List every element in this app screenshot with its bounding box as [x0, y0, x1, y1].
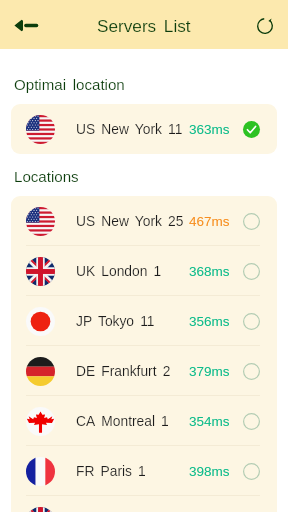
staticText: 398ms: [189, 464, 230, 479]
button[interactable]: UK London 1: [11, 246, 277, 296]
button[interactable]: DE Frankfurt 2: [11, 346, 277, 396]
staticText: US New York 11: [76, 122, 183, 137]
staticText: FR Paris 1: [76, 464, 146, 479]
button[interactable]: US New York 25: [11, 196, 277, 246]
button[interactable]: Back: [9, 8, 43, 42]
staticText: Locations: [14, 168, 79, 185]
button[interactable]: US New York 11: [11, 104, 277, 154]
staticText: CA Montreal 1: [76, 414, 169, 429]
staticText: 379ms: [189, 364, 230, 379]
staticText: 356ms: [189, 314, 230, 329]
staticText: 467ms: [189, 214, 230, 229]
staticText: JP Tokyo 11: [76, 314, 155, 329]
staticText: DE Frankfurt 2: [76, 364, 171, 379]
staticText: US New York 25: [76, 214, 184, 229]
staticText: 354ms: [189, 414, 230, 429]
staticText: UK London 1: [76, 264, 162, 279]
staticText: 368ms: [189, 264, 230, 279]
button[interactable]: FR Paris 1: [11, 446, 277, 496]
button[interactable]: CA Montreal 1: [11, 396, 277, 446]
button[interactable]: JP Tokyo 11: [11, 296, 277, 346]
staticText: Optimai location: [14, 76, 125, 93]
staticText: 363ms: [189, 122, 230, 137]
button[interactable]: Refresh: [248, 8, 282, 42]
staticText: Servers List: [97, 16, 191, 35]
button[interactable]: UK Manchester 3: [11, 496, 277, 512]
